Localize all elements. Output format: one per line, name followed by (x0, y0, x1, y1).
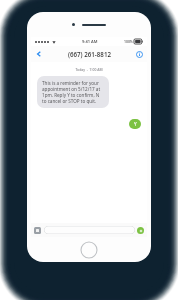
button[interactable]: Home (80, 241, 98, 259)
button[interactable] (44, 226, 135, 234)
staticText: 9:41 AM (82, 39, 98, 44)
button[interactable]: Attach (34, 227, 41, 234)
staticText: (667) 261-8812 (68, 50, 111, 58)
button[interactable]: Send (137, 227, 144, 234)
staticText: This is a reminder for your appointment … (42, 80, 104, 104)
button[interactable]: This is a reminder for your appointment … (37, 76, 109, 108)
staticText: 100% (124, 39, 133, 44)
button[interactable]: Y (129, 119, 141, 129)
staticText: Y (134, 121, 137, 127)
staticText: Today - 7:00 AM (31, 67, 147, 72)
button[interactable]: Back (34, 49, 44, 59)
button[interactable]: Details (134, 49, 144, 59)
